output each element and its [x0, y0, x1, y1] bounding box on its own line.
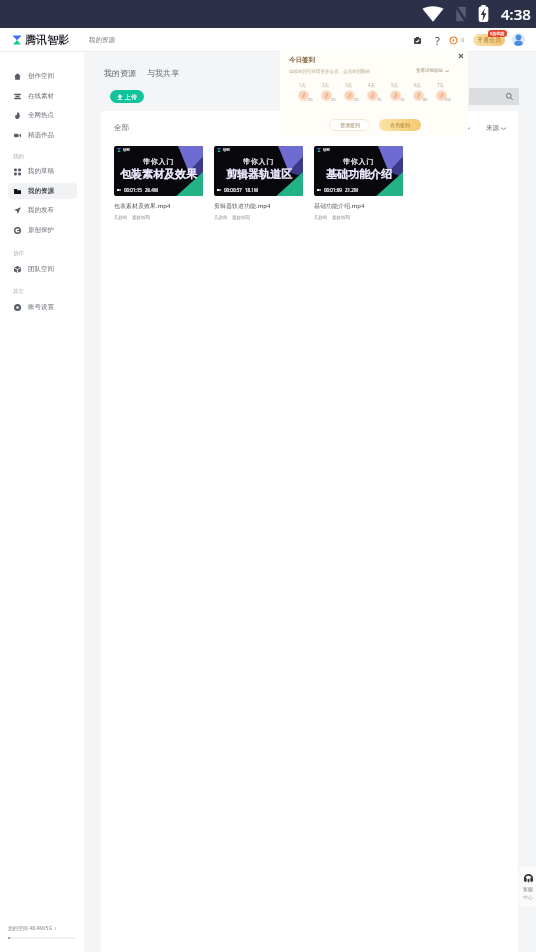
staticText: 其它 [13, 288, 24, 295]
staticText: 上传 [125, 93, 137, 101]
button[interactable]: 关闭 [457, 52, 465, 60]
staticText: 基础功能介绍.mp4 [314, 202, 365, 210]
button[interactable]: 在线素材 [8, 88, 77, 104]
staticText: ? [435, 33, 440, 47]
staticText: 18.1M [245, 187, 259, 193]
button[interactable]: 原创保护 [8, 222, 77, 238]
staticText: 00:01:09 [324, 187, 342, 193]
staticText: 基础功能介绍 [326, 167, 392, 181]
button[interactable]: 我的资源 [89, 36, 115, 44]
button[interactable]: 智影 [214, 146, 303, 221]
button[interactable]: 全网热点 [8, 107, 77, 123]
staticText: 100 [444, 97, 451, 102]
staticText: 20 [308, 97, 313, 102]
staticText: 中心 [523, 894, 533, 900]
staticText: 我的资源 [28, 187, 54, 195]
staticText: 带你入门 [243, 157, 275, 166]
staticText: 团队空间 [28, 265, 54, 273]
staticText: 26.4M [145, 187, 159, 193]
staticText: 70 [377, 97, 382, 102]
staticText: 20 [354, 97, 359, 102]
button[interactable]: 0 [450, 33, 465, 47]
button[interactable]: 全部 [114, 123, 129, 132]
button[interactable]: 类型 [450, 124, 470, 132]
staticText: 剪辑器轨道区 [226, 167, 292, 181]
button[interactable]: 团队空间 [8, 261, 77, 277]
staticText: 智影 [123, 148, 130, 152]
button[interactable]: 我的发布 [8, 202, 77, 218]
staticText: 连续签到可获得更多会员，会员签到翻倍 [289, 69, 370, 75]
staticText: 智影 [223, 148, 230, 152]
button[interactable]: 我的资源 [8, 183, 77, 199]
staticText: 腾讯智影 [25, 33, 69, 47]
staticText: 素材转码 [332, 215, 350, 221]
staticText: 21.2M [345, 187, 359, 193]
staticText: 带你入门 [143, 157, 175, 166]
staticText: 4天 [368, 82, 376, 88]
button[interactable]: 客服中心 [519, 867, 536, 907]
button[interactable]: 我的资源 [104, 68, 136, 78]
staticText: 20 [331, 97, 336, 102]
staticText: 包装素材及效果 [120, 167, 197, 181]
button[interactable]: 开通会员 [473, 34, 505, 46]
staticText: 7天 [437, 82, 445, 88]
staticText: 普通签到 [340, 122, 360, 128]
button[interactable]: 我的草稿 [8, 163, 77, 179]
button[interactable]: 个人中心 [512, 33, 525, 46]
button[interactable]: 会员签到 [379, 119, 421, 131]
staticText: 80 [423, 97, 428, 102]
staticText: 开通会员 [477, 36, 501, 44]
staticText: 几秒前 [214, 215, 228, 221]
staticText: 客服 [523, 886, 533, 892]
button[interactable]: 创作空间 [8, 68, 77, 84]
button[interactable]: 普通签到 [329, 119, 370, 131]
staticText: 3天 [345, 82, 353, 88]
staticText: 0 [461, 36, 465, 44]
staticText: 5天 [391, 82, 399, 88]
button[interactable]: 搜索 [469, 88, 519, 105]
staticText: 您的空间 48.4M/5G › [8, 925, 57, 932]
staticText: 精选作品 [28, 131, 54, 139]
button[interactable]: 智影 [314, 146, 403, 221]
staticText: 4:38 [501, 4, 531, 24]
staticText: 查看详细权益 [416, 68, 443, 74]
staticText: 5折优惠 [490, 31, 505, 36]
button[interactable]: 查看详细权益 [416, 68, 449, 74]
staticText: 账号设置 [28, 303, 54, 311]
staticText: 我的发布 [28, 206, 54, 214]
staticText: 包装素材及效果.mp4 [114, 202, 171, 210]
staticText: 素材转码 [232, 215, 250, 221]
staticText: 来源 [486, 124, 499, 132]
button[interactable]: 来源 [486, 124, 506, 132]
staticText: 会员签到 [390, 122, 410, 128]
staticText: 智影 [323, 148, 330, 152]
staticText: 我的 [13, 153, 24, 160]
staticText: 素材转码 [132, 215, 150, 221]
staticText: 协作 [13, 250, 24, 257]
button[interactable]: 上传 [110, 90, 144, 103]
staticText: 6天 [414, 82, 422, 88]
staticText: 创作空间 [28, 72, 54, 80]
staticText: 全网热点 [28, 111, 54, 119]
staticText: 1天 [299, 82, 307, 88]
button[interactable]: 账号设置 [8, 299, 77, 315]
staticText: 原创保护 [28, 226, 54, 234]
staticText: 2天 [322, 82, 330, 88]
button[interactable]: 与我共享 [147, 68, 179, 78]
staticText: 几秒前 [114, 215, 128, 221]
staticText: 今日签到 [289, 56, 315, 64]
staticText: 几秒前 [314, 215, 328, 221]
button[interactable]: 智影 [114, 146, 203, 221]
staticText: 我的草稿 [28, 167, 54, 175]
staticText: 00:01:15 [124, 187, 142, 193]
staticText: 00:00:57 [224, 187, 242, 193]
button[interactable]: 精选作品 [8, 127, 77, 143]
staticText: 带你入门 [343, 157, 375, 166]
staticText: 70 [400, 97, 405, 102]
staticText: 在线素材 [28, 92, 54, 100]
button[interactable]: 任务 [410, 33, 424, 47]
button[interactable]: 帮助 [430, 33, 444, 47]
staticText: 剪辑器轨道功能.mp4 [214, 202, 271, 210]
